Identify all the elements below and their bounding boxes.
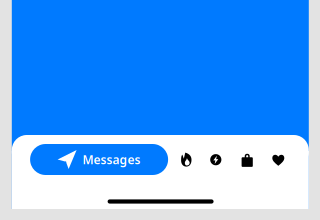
button[interactable]: Trending [171, 138, 201, 182]
button[interactable]: Shop [232, 138, 262, 182]
button[interactable]: Messages [30, 144, 168, 175]
staticText: Messages [83, 151, 141, 167]
button[interactable]: Activity [201, 138, 231, 182]
button[interactable]: Likes [263, 138, 293, 182]
